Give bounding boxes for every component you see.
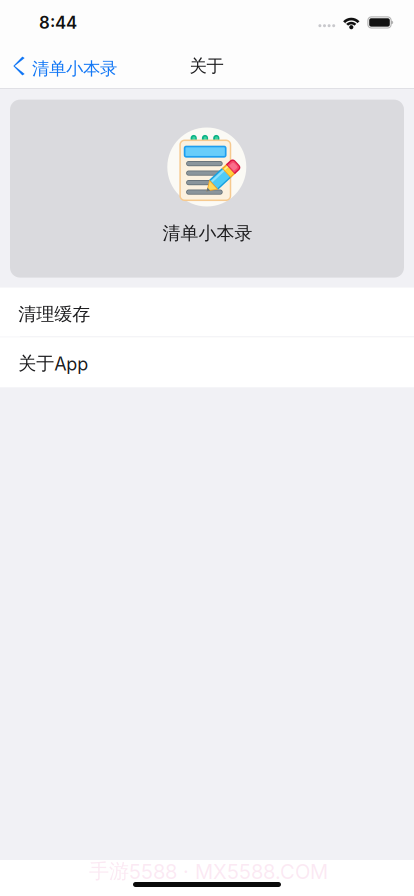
button[interactable]: 清理缓存 [0,288,414,337]
staticText: 关于App [18,352,88,375]
staticText: 清单小本录 [162,222,252,245]
button[interactable]: 清单小本录 [0,44,118,88]
staticText: 关于 [189,55,223,77]
button[interactable]: 关于App [0,337,414,387]
staticText: 8:44 [39,13,77,33]
staticText: 清单小本录 [32,58,117,80]
staticText: 清理缓存 [18,303,90,325]
staticText: 手游5588 · MX5588.COM [89,858,328,884]
